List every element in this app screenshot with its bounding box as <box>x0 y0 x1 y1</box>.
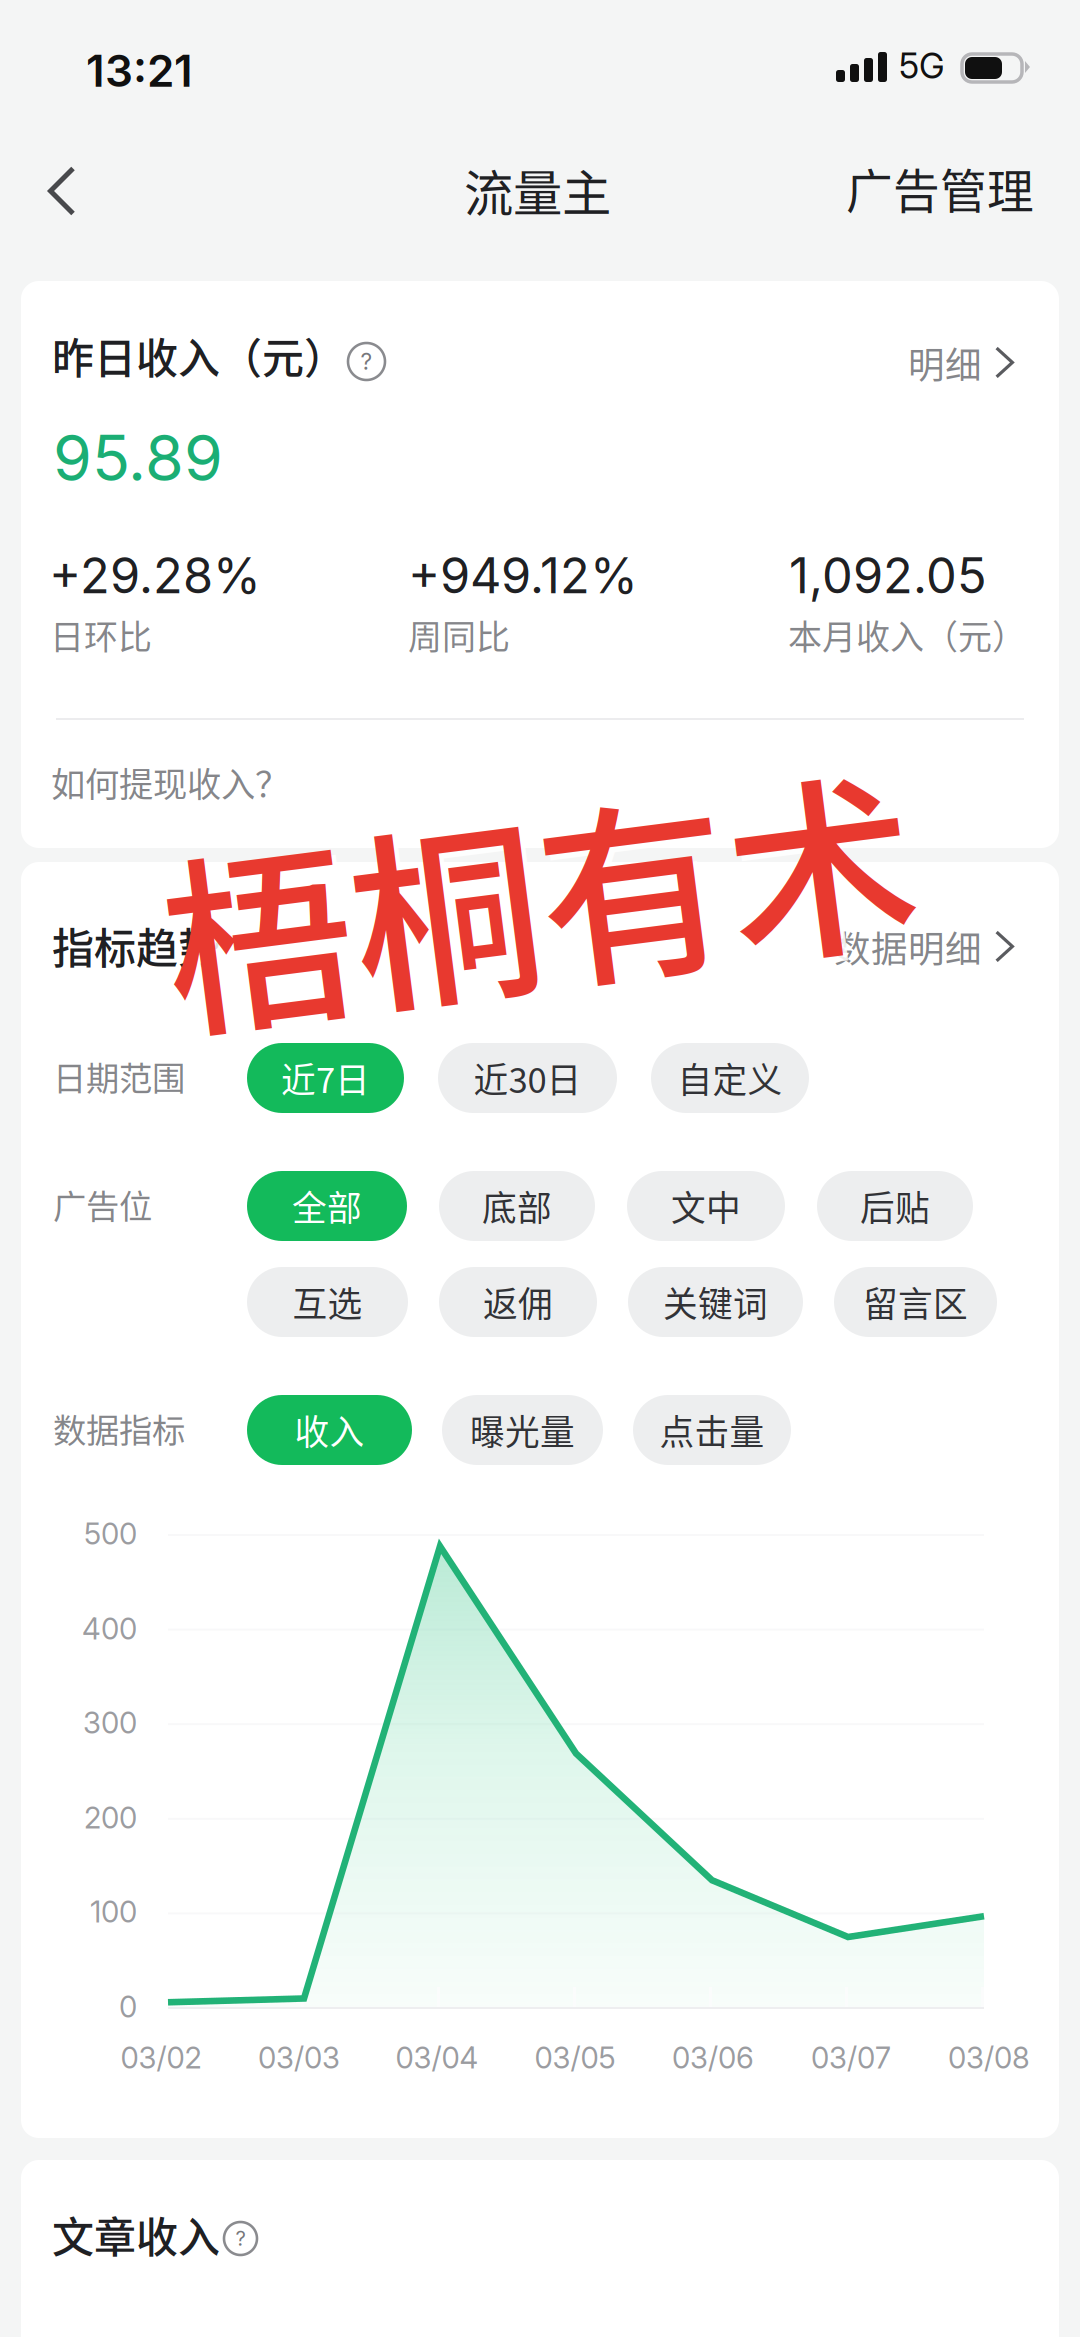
button[interactable]: 留言区 <box>834 1267 997 1337</box>
staticText: 收入 <box>294 1405 364 1455</box>
staticText: 流量主 <box>464 154 611 225</box>
button[interactable]: 收入 <box>247 1395 412 1465</box>
button[interactable]: Back <box>22 144 102 238</box>
staticText: 数据指标 <box>53 1404 185 1452</box>
staticText: 留言区 <box>863 1277 968 1327</box>
staticText: 200 <box>84 1800 137 1835</box>
staticText: 03/08 <box>948 2040 1030 2075</box>
staticText: 300 <box>83 1705 137 1740</box>
button[interactable]: 文中 <box>627 1171 785 1241</box>
staticText: ? <box>235 2226 245 2251</box>
staticText: 自定义 <box>677 1053 782 1103</box>
staticText: 5G <box>899 45 945 87</box>
button[interactable]: 数据明细 <box>824 908 1024 985</box>
staticText: 昨日收入（元） <box>52 325 346 386</box>
staticText: 95.89 <box>53 420 223 496</box>
staticText: 梧桐有术 <box>161 757 917 1031</box>
staticText: 1,092.05 <box>789 546 987 605</box>
staticText: 后贴 <box>860 1181 930 1231</box>
staticText: 近30日 <box>473 1053 581 1103</box>
button[interactable]: 返佣 <box>439 1267 597 1337</box>
staticText: 03/06 <box>672 2040 754 2075</box>
staticText: 03/02 <box>120 2040 201 2075</box>
staticText: +949.12% <box>408 546 638 605</box>
button[interactable]: 广告管理 <box>824 136 1056 240</box>
button[interactable]: 曝光量 <box>442 1395 603 1465</box>
button[interactable]: 关键词 <box>628 1267 803 1337</box>
staticText: 互选 <box>292 1277 362 1327</box>
staticText: 03/05 <box>534 2040 615 2075</box>
button[interactable]: 近30日 <box>438 1043 617 1113</box>
button[interactable]: 自定义 <box>651 1043 809 1113</box>
staticText: 本月收入（元） <box>788 610 1026 659</box>
staticText: 曝光量 <box>470 1405 575 1455</box>
staticText: 13:21 <box>86 44 193 97</box>
staticText: 如何提现收入？ <box>51 757 289 807</box>
staticText: 文章收入 <box>52 2204 220 2265</box>
staticText: 日期范围 <box>53 1052 185 1100</box>
staticText: 03/04 <box>395 2040 478 2075</box>
staticText: 日环比 <box>50 610 152 659</box>
button[interactable]: 后贴 <box>817 1171 973 1241</box>
button[interactable]: 互选 <box>247 1267 408 1337</box>
staticText: 周同比 <box>408 610 510 659</box>
staticText: 广告位 <box>53 1180 152 1228</box>
staticText: 指标趋势 <box>52 915 220 976</box>
staticText: 文中 <box>671 1181 741 1231</box>
button[interactable]: 点击量 <box>633 1395 791 1465</box>
staticText: 0 <box>119 1989 137 2024</box>
staticText: 明细 <box>908 336 982 389</box>
staticText: 梧桐有术 <box>166 762 922 1036</box>
staticText: ? <box>360 348 372 375</box>
staticText: 100 <box>90 1894 137 1929</box>
staticText: 03/07 <box>811 2040 891 2075</box>
button[interactable]: 全部 <box>247 1171 407 1241</box>
staticText: 点击量 <box>659 1405 764 1455</box>
staticText: 关键词 <box>663 1277 768 1327</box>
button[interactable]: 近7日 <box>247 1043 404 1113</box>
staticText: 数据明细 <box>834 920 982 973</box>
staticText: 底部 <box>482 1181 552 1231</box>
button[interactable]: 底部 <box>439 1171 595 1241</box>
staticText: 03/03 <box>258 2040 340 2075</box>
staticText: 近7日 <box>281 1053 370 1103</box>
button[interactable]: 明细 <box>898 324 1024 401</box>
staticText: 400 <box>82 1611 137 1646</box>
staticText: +29.28% <box>49 546 261 605</box>
staticText: 500 <box>84 1516 137 1551</box>
staticText: 全部 <box>292 1181 362 1231</box>
staticText: 广告管理 <box>846 154 1034 222</box>
button[interactable]: 如何提现收入？ <box>51 740 1022 824</box>
staticText: 返佣 <box>483 1277 553 1327</box>
